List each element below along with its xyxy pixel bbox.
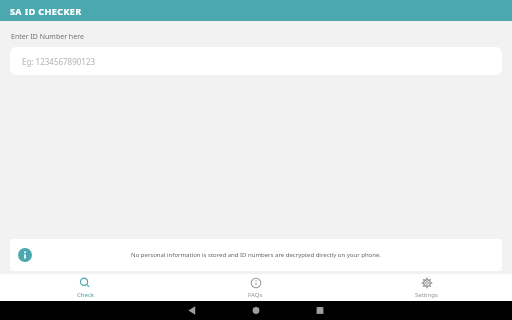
- button[interactable]: Check: [0, 275, 170, 301]
- staticText: No personal information is stored and ID…: [40, 251, 472, 259]
- staticText: Settings: [415, 291, 438, 299]
- other: Information: [18, 248, 32, 262]
- button[interactable]: Eg: 1234567890123: [10, 47, 502, 75]
- other: FAQs: [250, 277, 262, 289]
- staticText: Enter ID Number here: [11, 32, 84, 42]
- button[interactable]: FAQs: [170, 275, 341, 301]
- staticText: FAQs: [248, 291, 263, 299]
- button[interactable]: Settings: [341, 275, 512, 301]
- button[interactable]: Information: [10, 239, 502, 271]
- staticText: Check: [77, 291, 94, 299]
- staticText: SA ID CHECKER: [10, 5, 82, 17]
- other: Settings: [421, 277, 433, 289]
- other: Check: [79, 277, 91, 289]
- staticText: Eg: 1234567890123: [22, 56, 96, 67]
